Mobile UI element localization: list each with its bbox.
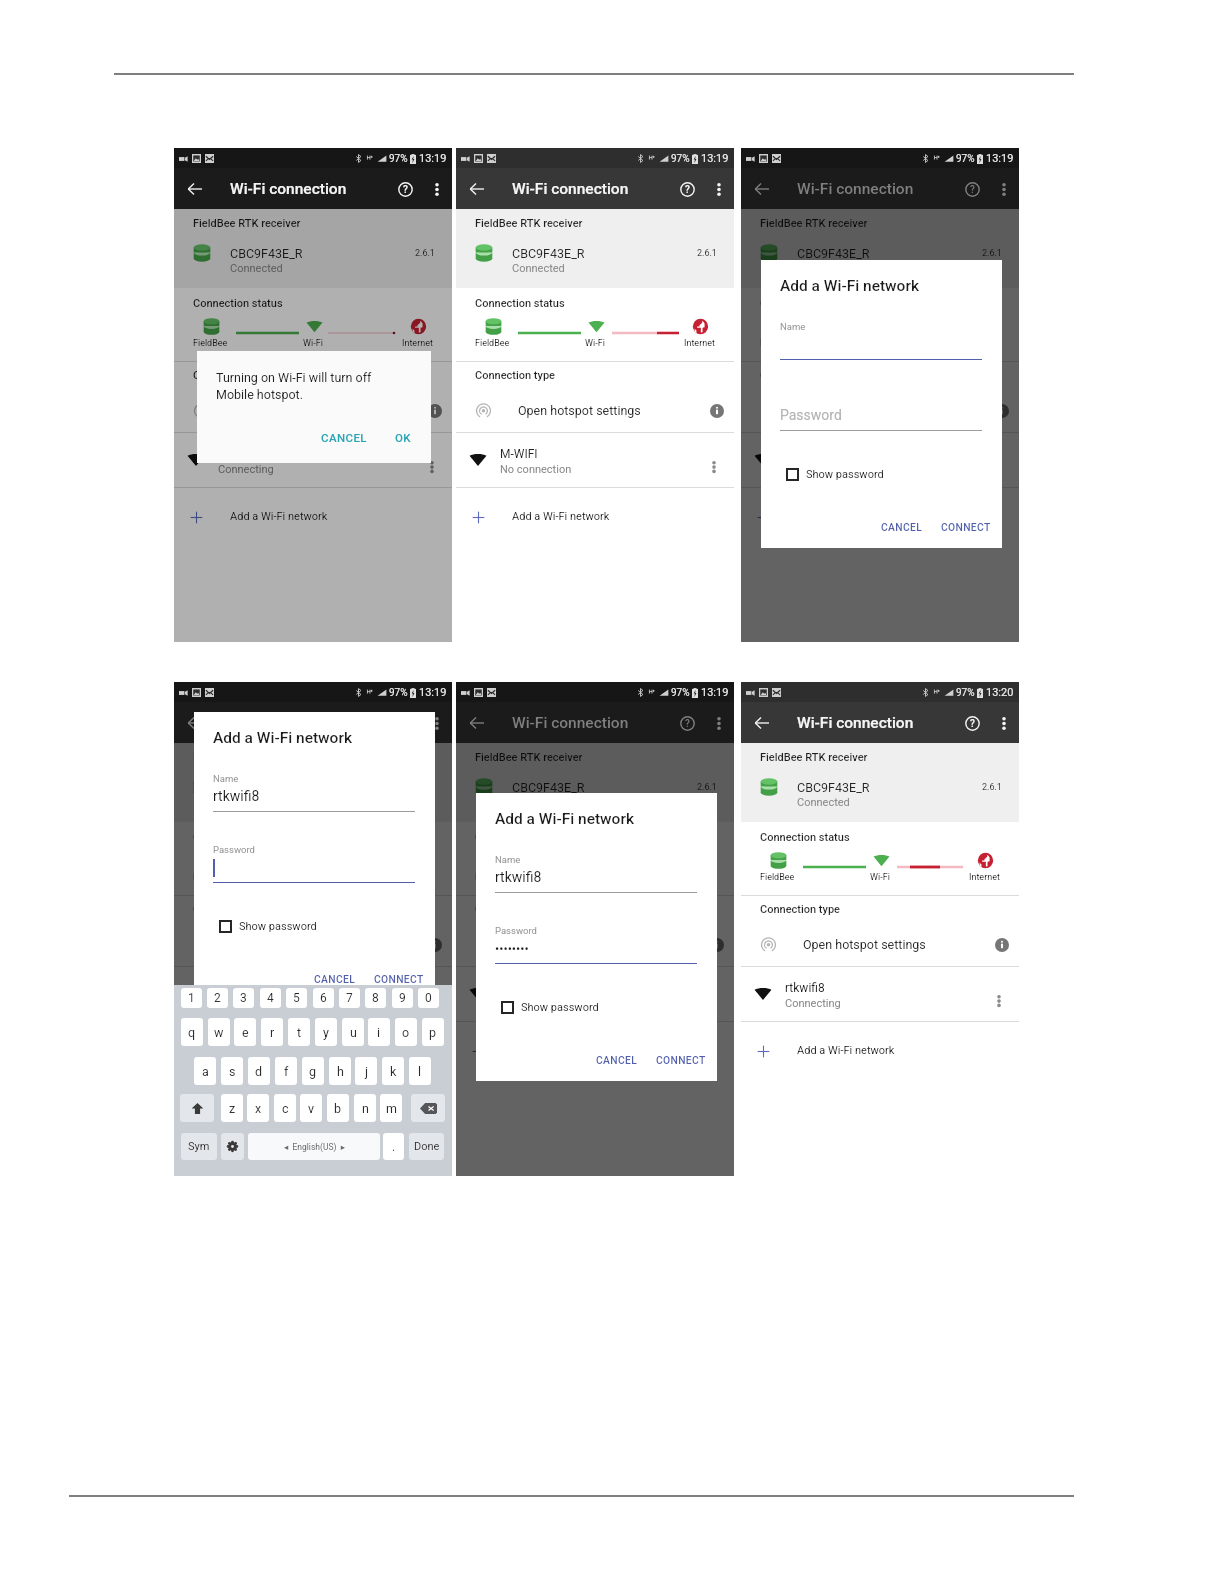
button[interactable] (456, 967, 734, 1021)
button[interactable]: 8 (365, 988, 386, 1008)
button[interactable]: More options (425, 711, 449, 735)
button[interactable]: Help (392, 710, 418, 736)
button[interactable]: 4 (260, 988, 281, 1008)
button[interactable]: q (181, 1018, 203, 1046)
button[interactable] (174, 967, 452, 1021)
button[interactable]: CONNECT (656, 1054, 706, 1066)
button[interactable]: l (409, 1057, 431, 1085)
button[interactable]: h (329, 1057, 351, 1085)
button[interactable]: Help (674, 176, 700, 202)
button[interactable]: Shift (180, 1094, 214, 1122)
button[interactable]: 5 (286, 988, 307, 1008)
button[interactable]: Network options (990, 458, 1008, 476)
button[interactable]: More options (992, 177, 1016, 201)
button[interactable]: CANCEL (321, 431, 367, 444)
button[interactable]: Network options (990, 992, 1008, 1010)
button[interactable] (741, 925, 1019, 965)
button[interactable]: OK (395, 431, 411, 444)
button[interactable]: Network options (705, 458, 723, 476)
button[interactable] (174, 1022, 452, 1070)
button[interactable]: o (395, 1018, 417, 1046)
button[interactable] (456, 391, 734, 431)
button[interactable]: Network options (423, 992, 441, 1010)
button[interactable]: c (274, 1094, 296, 1122)
button[interactable]: Back (182, 176, 208, 202)
button[interactable]: Help (674, 710, 700, 736)
button[interactable]: s (221, 1057, 243, 1085)
button[interactable] (456, 433, 734, 487)
button[interactable]: CONNECT (941, 521, 991, 533)
button[interactable]: Network options (705, 992, 723, 1010)
button[interactable]: 3 (233, 988, 254, 1008)
button[interactable]: Back (182, 710, 208, 736)
button[interactable]: Help (959, 710, 985, 736)
button[interactable] (741, 233, 1019, 285)
button[interactable]: ◂ English(US) ▸ (248, 1133, 380, 1160)
button[interactable]: m (380, 1094, 402, 1122)
button[interactable] (174, 767, 452, 819)
button[interactable]: CANCEL (596, 1054, 638, 1066)
button[interactable] (174, 433, 452, 487)
button[interactable]: CONNECT (374, 973, 424, 985)
button[interactable] (741, 391, 1019, 431)
button[interactable]: Sym (181, 1133, 217, 1160)
button[interactable]: 9 (392, 988, 413, 1008)
button[interactable]: Show password (501, 1001, 599, 1014)
button[interactable]: d (248, 1057, 270, 1085)
button[interactable] (741, 488, 1019, 536)
button[interactable]: Back (749, 710, 775, 736)
button[interactable] (174, 391, 452, 431)
button[interactable]: 1 (181, 988, 202, 1008)
button[interactable] (174, 233, 452, 285)
button[interactable] (174, 488, 452, 536)
button[interactable]: z (221, 1094, 243, 1122)
button[interactable]: 7 (339, 988, 360, 1008)
button[interactable]: n (354, 1094, 376, 1122)
button[interactable]: f (275, 1057, 297, 1085)
button[interactable] (741, 767, 1019, 819)
button[interactable]: More options (707, 711, 731, 735)
button[interactable]: 6 (313, 988, 334, 1008)
button[interactable]: . (383, 1133, 404, 1160)
button[interactable]: e (234, 1018, 256, 1046)
button[interactable]: Help (959, 176, 985, 202)
button[interactable] (174, 925, 452, 965)
button[interactable]: Back (749, 176, 775, 202)
button[interactable]: More options (992, 711, 1016, 735)
button[interactable] (456, 1022, 734, 1070)
button[interactable]: u (342, 1018, 364, 1046)
button[interactable]: a (194, 1057, 216, 1085)
button[interactable] (456, 233, 734, 285)
button[interactable]: Help (392, 176, 418, 202)
button[interactable]: CANCEL (881, 521, 923, 533)
button[interactable]: j (355, 1057, 377, 1085)
button[interactable]: i (368, 1018, 390, 1046)
button[interactable] (456, 488, 734, 536)
button[interactable]: r (261, 1018, 283, 1046)
button[interactable]: Backspace (411, 1094, 445, 1122)
button[interactable]: t (288, 1018, 310, 1046)
button[interactable]: Keyboard settings (221, 1133, 244, 1160)
button[interactable]: p (422, 1018, 444, 1046)
button[interactable]: More options (425, 177, 449, 201)
button[interactable]: k (382, 1057, 404, 1085)
button[interactable]: Show password (786, 468, 884, 481)
button[interactable]: g (302, 1057, 324, 1085)
button[interactable]: CANCEL (314, 973, 356, 985)
button[interactable]: Back (464, 176, 490, 202)
button[interactable]: Back (464, 710, 490, 736)
button[interactable]: x (247, 1094, 269, 1122)
button[interactable] (741, 1022, 1019, 1070)
button[interactable]: 2 (207, 988, 228, 1008)
button[interactable]: v (300, 1094, 322, 1122)
button[interactable] (741, 967, 1019, 1021)
button[interactable] (456, 767, 734, 819)
button[interactable]: Network options (423, 458, 441, 476)
button[interactable]: Done (409, 1133, 444, 1160)
button[interactable]: y (315, 1018, 337, 1046)
button[interactable]: Show password (219, 920, 317, 933)
button[interactable]: 0 (418, 988, 439, 1008)
button[interactable]: More options (707, 177, 731, 201)
button[interactable]: b (327, 1094, 349, 1122)
button[interactable] (456, 925, 734, 965)
